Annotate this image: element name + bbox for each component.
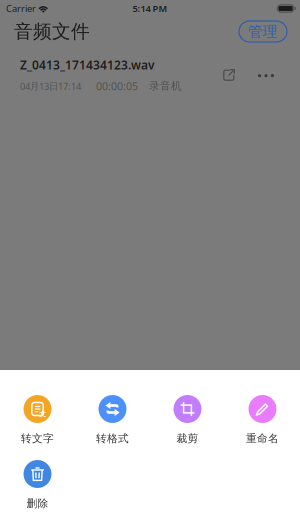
- button[interactable]: 更多: [253, 64, 279, 87]
- staticText: 04月13日17:14: [20, 80, 81, 92]
- button[interactable]: 文: [0, 395, 75, 460]
- staticText: 转格式: [96, 432, 129, 445]
- button[interactable]: 管理: [239, 21, 287, 42]
- button[interactable]: 重命名: [225, 395, 300, 460]
- staticText: 录音机: [149, 79, 182, 93]
- button[interactable]: 删除: [0, 460, 75, 525]
- button[interactable]: 转格式: [75, 395, 150, 460]
- staticText: 5:14 PM: [132, 2, 167, 15]
- staticText: 转文字: [21, 432, 54, 445]
- staticText: 裁剪: [176, 432, 198, 445]
- staticText: 删除: [26, 497, 48, 510]
- staticText: Carrier: [6, 2, 36, 15]
- staticText: 文: [39, 410, 46, 418]
- staticText: Z_0413_171434123.wav: [20, 57, 155, 73]
- staticText: 00:00:05: [96, 79, 138, 93]
- staticText: 重命名: [246, 432, 279, 445]
- button[interactable]: 裁剪: [150, 395, 225, 460]
- staticText: 管理: [248, 22, 278, 40]
- button[interactable]: 分享: [218, 64, 241, 87]
- staticText: 音频文件: [14, 20, 90, 43]
